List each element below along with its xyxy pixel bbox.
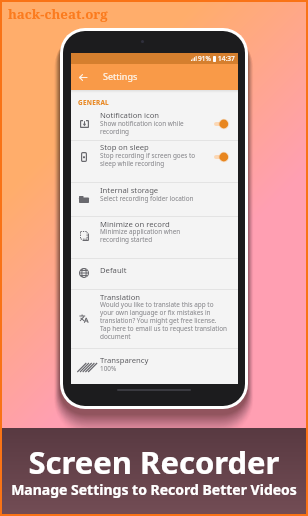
staticText: Transparency bbox=[100, 355, 149, 365]
staticText: Show notification icon while recording bbox=[100, 119, 184, 136]
staticText: Select recording folder location bbox=[100, 194, 194, 203]
staticText: Internal storage bbox=[100, 185, 159, 195]
staticText: Minimize on record bbox=[100, 219, 170, 229]
staticText: GENERAL bbox=[78, 98, 109, 107]
staticText: Manage Settings to Record Better Videos bbox=[0, 480, 308, 499]
staticText: Settings bbox=[103, 70, 138, 82]
staticText: Screen Recorder bbox=[0, 441, 308, 483]
button[interactable]: Internal storage bbox=[71, 183, 238, 217]
staticText: 14:37 bbox=[218, 54, 235, 63]
staticText: hack-cheat.org bbox=[8, 5, 108, 23]
staticText: Minimize application when recording star… bbox=[100, 227, 181, 244]
staticText: 100% bbox=[100, 364, 117, 373]
button[interactable]: Transparency bbox=[71, 349, 238, 382]
button[interactable]: Back bbox=[71, 64, 94, 90]
button[interactable]: Default bbox=[71, 259, 238, 288]
button[interactable]: Minimize on record bbox=[71, 217, 238, 258]
staticText: Would you like to translate this app to … bbox=[100, 300, 228, 341]
staticText: Notification icon bbox=[100, 110, 160, 120]
staticText: Default bbox=[100, 265, 127, 275]
staticText: Stop on sleep bbox=[100, 142, 149, 152]
staticText: 91% bbox=[198, 54, 211, 63]
button[interactable]: Stop on sleep bbox=[71, 141, 238, 182]
button[interactable]: Notification icon bbox=[71, 90, 238, 140]
button[interactable]: Translation bbox=[71, 290, 238, 348]
staticText: Stop recording if screen goes to sleep w… bbox=[100, 151, 196, 168]
staticText: Translation bbox=[100, 292, 141, 302]
